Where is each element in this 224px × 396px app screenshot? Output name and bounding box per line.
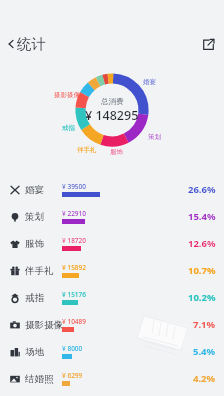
button[interactable]: 结婚照	[0, 365, 224, 392]
staticText: 4.2%	[193, 372, 216, 385]
button[interactable]: 场地	[0, 338, 224, 365]
button[interactable]: 婚宴	[0, 176, 224, 203]
staticText: 总消费	[101, 97, 124, 106]
staticText: 摄影摄像	[54, 91, 80, 99]
staticText: 结婚照	[25, 373, 54, 385]
staticText: ¥ 6299	[62, 371, 83, 380]
staticText: 5.4%	[193, 345, 216, 358]
staticText: 场地	[25, 346, 44, 358]
staticText: 服饰	[25, 238, 44, 250]
staticText: ¥ 39500	[62, 182, 86, 191]
staticText: 10.7%	[188, 264, 216, 277]
staticText: 婚宴	[143, 78, 156, 86]
staticText: 戒指	[25, 292, 44, 304]
button[interactable]: 摄影摄像	[0, 311, 224, 338]
button[interactable]: Share	[198, 34, 218, 54]
staticText: 戒指	[62, 124, 75, 132]
staticText: 7.1%	[193, 318, 216, 331]
button[interactable]: 服饰	[0, 230, 224, 257]
button[interactable]: 戒指	[0, 284, 224, 311]
staticText: ¥ 18720	[62, 236, 86, 245]
staticText: ¥ 15892	[62, 263, 86, 272]
staticText: ¥ 22910	[62, 209, 86, 218]
staticText: ¥ 10489	[62, 317, 86, 326]
staticText: 婚宴	[25, 184, 44, 196]
staticText: 摄影摄像	[25, 319, 63, 331]
staticText: 26.6%	[188, 183, 216, 196]
staticText: 服饰	[110, 148, 123, 156]
staticText: 策划	[148, 133, 161, 141]
staticText: 10.2%	[188, 291, 216, 304]
staticText: 伴手礼	[25, 265, 54, 277]
button[interactable]: 策划	[0, 203, 224, 230]
staticText: 12.6%	[188, 237, 216, 250]
button[interactable]: 伴手礼	[0, 257, 224, 284]
staticText: 15.4%	[188, 210, 216, 223]
staticText: ¥ 8000	[62, 344, 83, 353]
button[interactable]: Back	[3, 36, 19, 52]
staticText: 伴手礼	[77, 146, 97, 154]
staticText: ¥ 15176	[62, 290, 86, 299]
staticText: ¥ 148295	[85, 107, 139, 124]
staticText: 策划	[25, 211, 44, 223]
staticText: 统计	[17, 35, 46, 53]
